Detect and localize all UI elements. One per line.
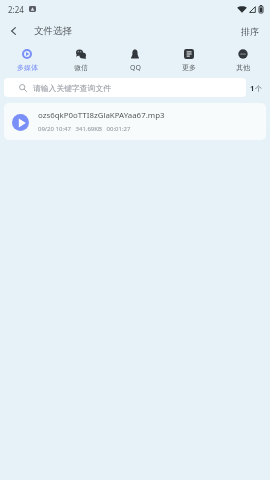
button[interactable]: 其他 <box>216 44 270 72</box>
button[interactable]: 请输入关键字查询文件 <box>4 78 246 97</box>
staticText: ozs6qkP0oTTI8zGlaKPAYaa67.mp3 <box>38 110 165 121</box>
staticText: 2:24 <box>8 4 24 15</box>
button[interactable]: 排序 <box>235 22 265 41</box>
staticText: 文件选择 <box>34 25 72 37</box>
staticText: QQ <box>130 63 141 73</box>
staticText: 1 <box>250 83 255 93</box>
staticText: 09/20 10:47 341.69KB 00:01:27 <box>38 125 131 133</box>
staticText: 请输入关键字查询文件 <box>33 83 111 93</box>
button[interactable]: QQ <box>108 44 162 73</box>
staticText: 其他 <box>236 63 250 72</box>
button[interactable]: ozs6qkP0oTTI8zGlaKPAYaa67.mp3 <box>4 103 266 140</box>
staticText: 多媒体 <box>17 63 38 72</box>
staticText: 更多 <box>182 63 196 72</box>
button[interactable]: 微信 <box>54 44 108 72</box>
button[interactable]: 多媒体 <box>0 44 54 72</box>
staticText: 排序 <box>241 26 259 37</box>
staticText: 微信 <box>74 63 88 72</box>
button[interactable]: Back <box>7 21 20 41</box>
button[interactable]: 更多 <box>162 44 216 72</box>
staticText: 个 <box>255 84 262 93</box>
